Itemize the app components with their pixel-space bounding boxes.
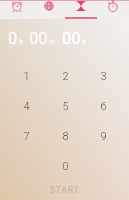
staticText: START	[50, 185, 80, 195]
button[interactable]: World clock	[33, 0, 65, 12]
staticText: s	[82, 38, 86, 46]
staticText: 2	[62, 70, 69, 83]
button[interactable]: 0	[46, 151, 84, 181]
button[interactable]	[7, 151, 46, 181]
button[interactable]: 7	[7, 121, 46, 151]
staticText: 0	[62, 160, 69, 173]
staticText: m	[49, 38, 56, 46]
button[interactable]: 2	[46, 61, 84, 91]
button[interactable]: 5	[46, 91, 84, 121]
staticText: 9	[100, 130, 107, 143]
button[interactable]: Alarm	[0, 0, 33, 12]
button[interactable]: 4	[7, 91, 46, 121]
staticText: 1	[23, 70, 30, 83]
button[interactable]: Stopwatch	[97, 0, 129, 12]
staticText: 0	[8, 29, 18, 48]
staticText: 7	[23, 130, 30, 143]
staticText: h	[19, 38, 23, 46]
button[interactable]: Timer	[65, 0, 97, 12]
button[interactable]: 3	[84, 61, 122, 91]
staticText: 5	[62, 100, 69, 113]
button[interactable]: 6	[84, 91, 122, 121]
staticText: 00	[62, 29, 81, 48]
button[interactable]: 9	[84, 121, 122, 151]
button[interactable]: 8	[46, 121, 84, 151]
staticText: 6	[100, 100, 107, 113]
staticText: 3	[100, 70, 107, 83]
staticText: 4	[23, 100, 30, 113]
button[interactable]: START	[0, 182, 129, 198]
button[interactable]	[84, 151, 122, 181]
staticText: 8	[62, 130, 69, 143]
staticText: 00	[29, 29, 48, 48]
button[interactable]: 1	[7, 61, 46, 91]
